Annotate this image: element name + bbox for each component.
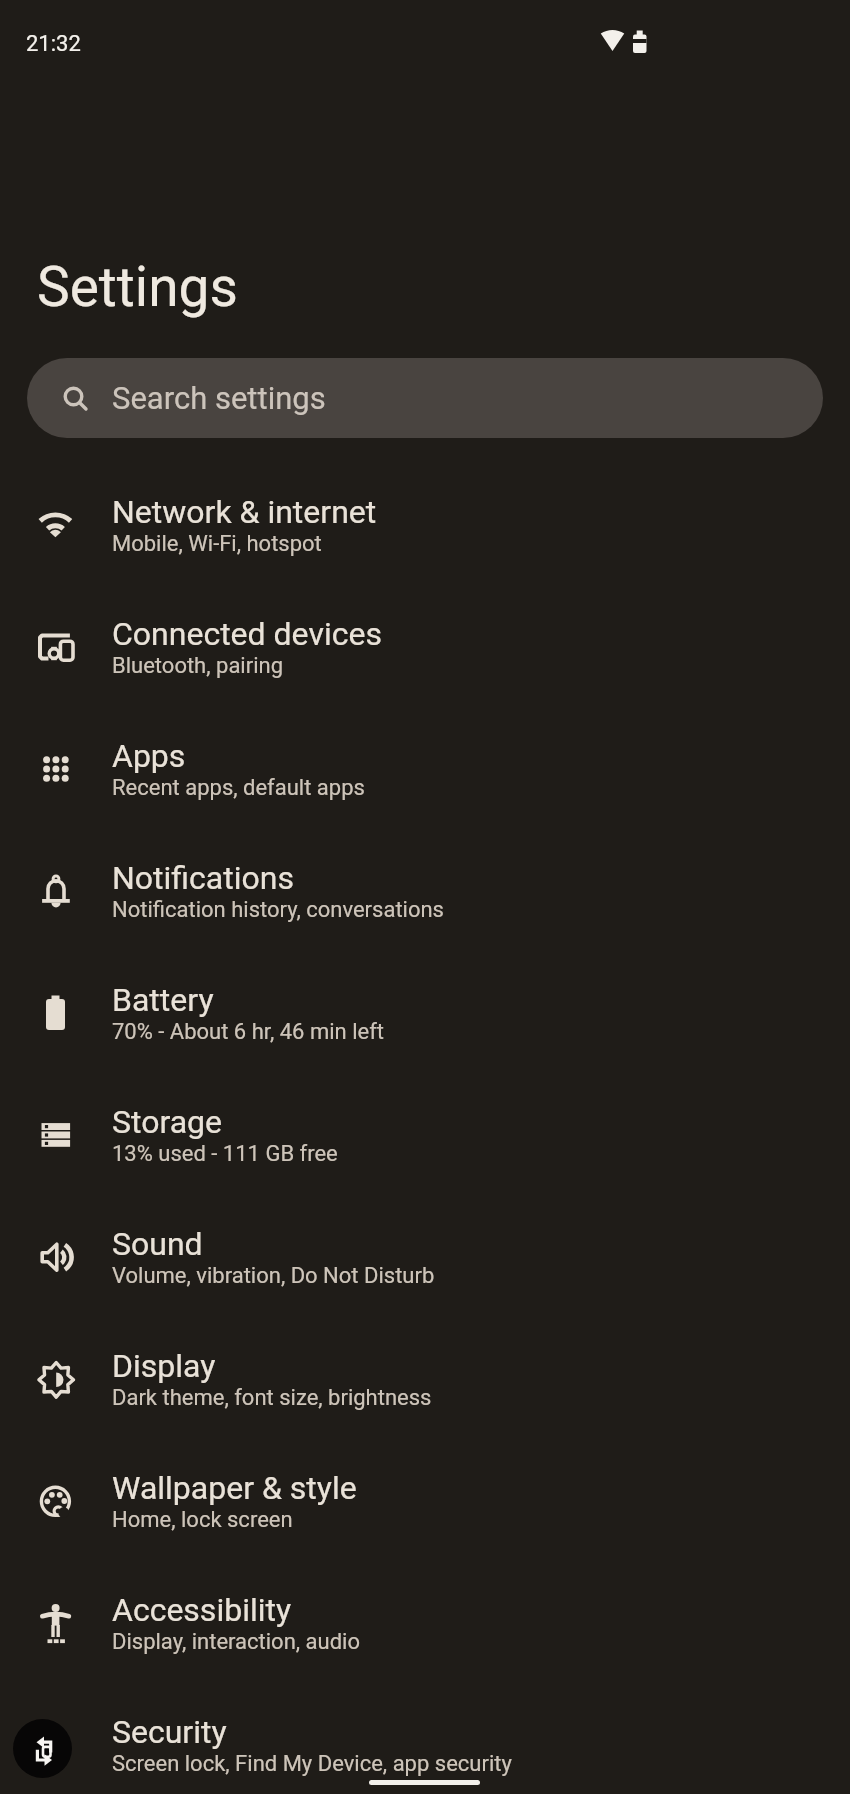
staticText: Display [112,1347,216,1385]
button[interactable] [13,1719,72,1778]
button[interactable]: Network & internet [0,468,850,590]
staticText: Wallpaper & style [112,1469,357,1507]
button[interactable]: Security [0,1688,850,1794]
staticText: Notifications [112,859,294,897]
staticText: Battery [112,981,214,1019]
staticText: Notification history, conversations [112,897,444,923]
staticText: Bluetooth, pairing [112,653,284,679]
staticText: Search settings [112,380,326,416]
staticText: Accessibility [112,1591,292,1629]
staticText: Apps [112,737,186,775]
button[interactable]: Search settings [27,358,823,438]
staticText: Volume, vibration, Do Not Disturb [112,1263,435,1289]
button[interactable]: Wallpaper & style [0,1444,850,1566]
staticText: Recent apps, default apps [112,775,365,801]
staticText: Security [112,1713,227,1751]
button[interactable]: Storage [0,1078,850,1200]
button[interactable]: Apps [0,712,850,834]
button[interactable]: Connected devices [0,590,850,712]
staticText: Mobile, Wi-Fi, hotspot [112,531,322,557]
button[interactable]: Notifications [0,834,850,956]
button[interactable]: Accessibility [0,1566,850,1688]
staticText: 13% used - 111 GB free [112,1141,338,1167]
staticText: Sound [112,1225,203,1263]
staticText: Settings [37,255,238,319]
staticText: Display, interaction, audio [112,1629,360,1655]
staticText: Storage [112,1103,222,1141]
staticText: Dark theme, font size, brightness [112,1385,432,1411]
button[interactable]: Battery [0,956,850,1078]
button[interactable]: Display [0,1322,850,1444]
staticText: Connected devices [112,615,382,653]
staticText: Home, lock screen [112,1507,293,1533]
staticText: 21:32 [26,31,81,57]
button[interactable]: Sound [0,1200,850,1322]
staticText: 70% - About 6 hr, 46 min left [112,1019,385,1045]
staticText: Network & internet [112,493,377,531]
staticText: Screen lock, Find My Device, app securit… [112,1751,512,1777]
